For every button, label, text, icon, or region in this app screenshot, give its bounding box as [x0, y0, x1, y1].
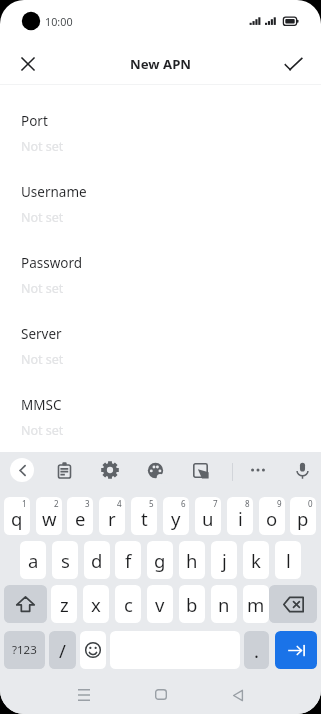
staticText: Not set	[21, 280, 64, 297]
button[interactable]: Port	[0, 107, 321, 178]
button[interactable]: More	[242, 454, 274, 486]
staticText: h	[186, 548, 198, 573]
button[interactable]: Save	[271, 42, 315, 85]
staticText: Not set	[21, 422, 64, 439]
button[interactable]: z	[51, 585, 77, 623]
button[interactable]: Home	[141, 674, 181, 714]
button[interactable]: w	[36, 497, 62, 535]
button[interactable]: g	[147, 541, 173, 579]
button[interactable]: t	[131, 497, 157, 535]
staticText: o	[266, 506, 278, 531]
staticText: q	[11, 506, 23, 531]
button[interactable]: d	[84, 541, 110, 579]
staticText: /	[59, 638, 66, 663]
button[interactable]: ?123	[4, 631, 45, 669]
staticText: Username	[21, 183, 87, 201]
button[interactable]: j	[211, 541, 237, 579]
staticText: Port	[21, 112, 48, 130]
staticText: y	[171, 506, 181, 531]
staticText: b	[186, 592, 198, 617]
staticText: a	[28, 548, 39, 573]
button[interactable]: l	[275, 541, 301, 579]
staticText: u	[202, 506, 214, 531]
button[interactable]: Username	[0, 178, 321, 249]
staticText: i	[238, 506, 243, 531]
button[interactable]: k	[243, 541, 269, 579]
staticText: Not set	[21, 209, 64, 226]
button[interactable]: c	[115, 585, 141, 623]
button[interactable]: Emoji	[80, 631, 106, 669]
button[interactable]: f	[115, 541, 141, 579]
button[interactable]: r	[99, 497, 125, 535]
staticText: 9	[277, 498, 282, 509]
button[interactable]: Back	[218, 675, 258, 714]
button[interactable]: p	[290, 497, 316, 535]
button[interactable]: x	[83, 585, 109, 623]
button[interactable]: Settings	[94, 454, 126, 486]
staticText: m	[247, 592, 265, 617]
button[interactable]: h	[179, 541, 205, 579]
button[interactable]: MMSC	[0, 391, 321, 462]
staticText: 8	[245, 498, 250, 509]
button[interactable]: n	[211, 585, 237, 623]
staticText: ?123	[12, 642, 37, 658]
staticText: Not set	[21, 351, 64, 368]
staticText: 7	[213, 498, 218, 509]
staticText: x	[91, 592, 101, 617]
button[interactable]: Backspace	[269, 585, 317, 623]
staticText: l	[286, 548, 291, 573]
button[interactable]: b	[179, 585, 205, 623]
staticText: New APN	[130, 55, 192, 73]
staticText: 2	[54, 498, 59, 509]
staticText: r	[108, 506, 116, 531]
button[interactable]: Back	[10, 458, 34, 482]
button[interactable]: Themes	[139, 454, 171, 486]
button[interactable]: Recents	[64, 675, 104, 714]
staticText: v	[155, 592, 165, 617]
button[interactable]: Close	[6, 42, 50, 85]
button[interactable]: e	[67, 497, 93, 535]
staticText: Password	[21, 254, 83, 272]
button[interactable]: Stickers	[184, 454, 216, 486]
button[interactable]: y	[163, 497, 189, 535]
button[interactable]: Clipboard	[48, 454, 80, 486]
staticText: 0	[308, 498, 313, 509]
staticText: c	[124, 592, 133, 617]
staticText: 10:00	[45, 14, 73, 29]
staticText: p	[297, 506, 309, 531]
staticText: Server	[21, 325, 62, 343]
staticText: g	[154, 548, 166, 573]
staticText: k	[251, 548, 261, 573]
staticText: z	[60, 592, 69, 617]
staticText: d	[91, 548, 103, 573]
button[interactable]: Password	[0, 249, 321, 320]
staticText: t	[141, 506, 148, 531]
staticText: j	[222, 548, 227, 573]
button[interactable]: v	[147, 585, 173, 623]
button[interactable]: m	[243, 585, 269, 623]
button[interactable]: a	[20, 541, 46, 579]
button[interactable]: o	[259, 497, 285, 535]
staticText: 6	[181, 498, 186, 509]
staticText: s	[61, 548, 70, 573]
button[interactable]: s	[52, 541, 78, 579]
staticText: e	[75, 506, 86, 531]
staticText: 3	[85, 498, 90, 509]
staticText: n	[218, 592, 230, 617]
button[interactable]: Enter	[275, 631, 317, 669]
staticText: Not set	[21, 138, 64, 155]
button[interactable]: u	[195, 497, 221, 535]
button[interactable]: Server	[0, 320, 321, 391]
staticText: MMSC	[21, 396, 62, 414]
button[interactable]: q	[4, 497, 30, 535]
button[interactable]: /	[49, 631, 76, 669]
staticText: 1	[22, 498, 27, 509]
button[interactable]: Shift	[4, 585, 47, 623]
staticText: .	[254, 638, 259, 663]
button[interactable]: .	[244, 631, 269, 669]
staticText: 5	[149, 498, 154, 509]
button[interactable]: Voice input	[286, 454, 318, 486]
staticText: f	[125, 548, 132, 573]
button[interactable]: i	[227, 497, 253, 535]
